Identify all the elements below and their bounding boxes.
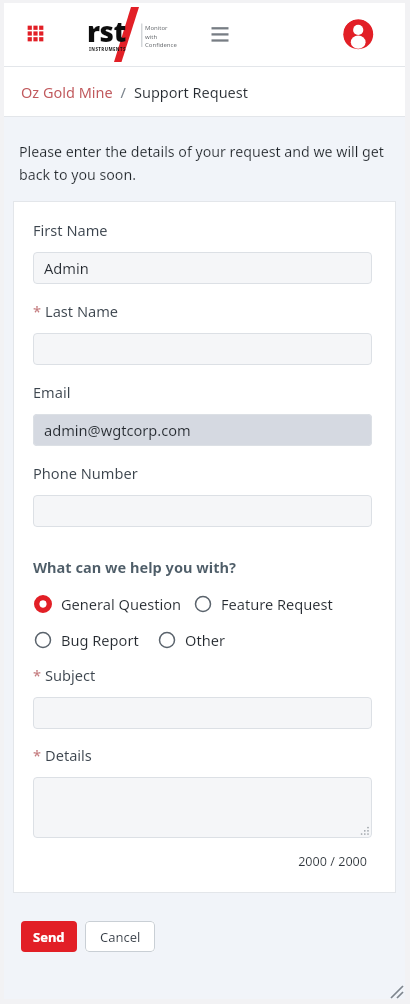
button[interactable]: Account — [343, 19, 374, 50]
button[interactable]: Menu — [205, 19, 234, 46]
staticText: 2000 / 2000 — [33, 853, 367, 870]
staticText: Bug Report — [61, 630, 139, 650]
staticText: / — [113, 82, 134, 102]
staticText: Feature Request — [221, 594, 333, 614]
button[interactable]: Send — [21, 921, 77, 952]
button[interactable]: Other — [157, 630, 225, 650]
staticText: Monitor with Confidence — [145, 24, 177, 48]
staticText: Subject — [45, 665, 96, 685]
staticText: Cancel — [100, 928, 141, 946]
staticText: * — [33, 745, 45, 765]
button[interactable] — [33, 333, 372, 365]
staticText: Please enter the details of your request… — [19, 142, 393, 184]
staticText: Send — [33, 928, 65, 946]
button[interactable]: Cancel — [85, 921, 155, 952]
staticText: * — [33, 665, 45, 685]
staticText: INSTRUMENTS — [89, 46, 126, 52]
staticText: Phone Number — [33, 463, 138, 483]
staticText: rst — [87, 12, 126, 50]
button[interactable] — [33, 495, 372, 527]
staticText: Admin — [44, 258, 89, 278]
staticText: Details — [45, 745, 92, 765]
button[interactable]: admin@wgtcorp.com — [33, 414, 372, 446]
staticText: admin@wgtcorp.com — [44, 420, 191, 440]
button[interactable]: Admin — [33, 252, 372, 284]
button[interactable]: General Question — [33, 594, 193, 614]
button[interactable]: Bug Report — [33, 630, 157, 650]
staticText: Last Name — [45, 301, 119, 321]
button[interactable]: Feature Request — [193, 594, 333, 614]
staticText: * — [33, 301, 45, 321]
staticText: What can we help you with? — [33, 557, 236, 577]
staticText: Other — [185, 630, 225, 650]
staticText: Email — [33, 382, 71, 402]
staticText: Support Request — [134, 82, 248, 102]
button[interactable]: Oz Gold Mine — [21, 82, 113, 102]
button[interactable] — [33, 697, 372, 729]
button[interactable] — [33, 777, 372, 838]
button[interactable]: Apps — [23, 21, 48, 46]
staticText: General Question — [61, 594, 182, 614]
staticText: First Name — [33, 220, 108, 240]
